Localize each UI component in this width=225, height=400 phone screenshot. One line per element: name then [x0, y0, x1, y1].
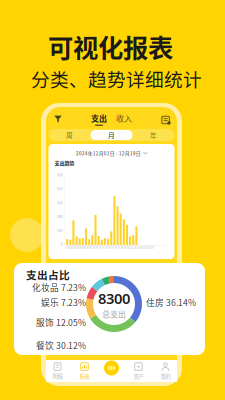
- staticText: 15: [109, 246, 113, 249]
- staticText: 月: [108, 130, 115, 140]
- staticText: 餐饮 30.12%: [36, 339, 86, 351]
- staticText: 16: [112, 246, 116, 249]
- staticText: 28: [150, 246, 154, 249]
- staticText: 21: [128, 246, 132, 249]
- staticText: 25: [141, 246, 145, 249]
- staticText: 07: [84, 246, 88, 249]
- staticText: 可视化报表: [48, 28, 173, 65]
- staticText: 27: [147, 246, 151, 249]
- staticText: 23: [134, 246, 138, 249]
- staticText: 700: [56, 172, 62, 178]
- staticText: 20: [125, 246, 129, 249]
- button[interactable]: Calendar: [160, 114, 170, 124]
- staticText: 支出趋势: [54, 159, 74, 166]
- button[interactable]: 月: [90, 130, 132, 140]
- staticText: 资产: [133, 372, 143, 380]
- staticText: 09: [90, 246, 94, 249]
- button[interactable]: 报表: [71, 360, 98, 382]
- button[interactable]: 收入: [117, 113, 131, 125]
- staticText: 支出占比: [26, 267, 70, 282]
- staticText: 140: [56, 227, 62, 233]
- staticText: 05: [78, 246, 82, 249]
- staticText: 280: [56, 214, 62, 219]
- staticText: 12: [100, 246, 104, 249]
- button[interactable]: 明细: [44, 360, 71, 382]
- staticText: 14: [106, 246, 110, 249]
- staticText: 总支出: [102, 308, 126, 319]
- button[interactable]: 年: [132, 130, 174, 140]
- staticText: 化妆品 7.23%: [32, 281, 86, 293]
- staticText: 周: [66, 130, 73, 140]
- staticText: 13: [103, 246, 107, 249]
- staticText: 02: [68, 246, 72, 249]
- staticText: 01: [65, 246, 69, 249]
- staticText: 18: [119, 246, 123, 249]
- staticText: 420: [56, 200, 62, 205]
- staticText: 服饰 12.05%: [36, 316, 86, 328]
- staticText: 我的: [160, 372, 170, 380]
- staticText: 24: [138, 246, 142, 249]
- button[interactable]: 支出: [92, 113, 106, 125]
- staticText: 2024年12月01日 - 12月19日: [76, 149, 141, 156]
- button[interactable]: 2024年12月01日 - 12月19日: [48, 147, 174, 159]
- staticText: 11: [97, 246, 101, 249]
- button[interactable]: Voice record: [102, 359, 120, 377]
- staticText: 06: [81, 246, 85, 249]
- staticText: 8300: [98, 288, 130, 308]
- staticText: 年: [150, 130, 157, 140]
- staticText: 10: [93, 246, 97, 249]
- staticText: 08: [87, 246, 91, 249]
- staticText: 17: [116, 246, 120, 249]
- staticText: 住房 36.14%: [146, 296, 196, 308]
- staticText: 明细: [52, 372, 62, 380]
- staticText: 0: [60, 241, 62, 247]
- staticText: 19: [122, 246, 126, 249]
- staticText: 22: [131, 246, 135, 249]
- staticText: 04: [75, 246, 79, 249]
- button[interactable]: 我的: [152, 360, 179, 382]
- staticText: 560: [56, 186, 62, 191]
- staticText: 26: [144, 246, 148, 249]
- staticText: 支出: [91, 112, 107, 124]
- staticText: 报表: [79, 372, 89, 380]
- button[interactable]: Filter: [53, 114, 63, 124]
- staticText: 娱乐 7.23%: [41, 296, 86, 308]
- staticText: 03: [71, 246, 75, 249]
- button[interactable]: 周: [48, 130, 90, 140]
- staticText: 分类、趋势详细统计: [31, 65, 202, 92]
- staticText: 收入: [116, 112, 132, 124]
- button[interactable]: 资产: [125, 360, 152, 382]
